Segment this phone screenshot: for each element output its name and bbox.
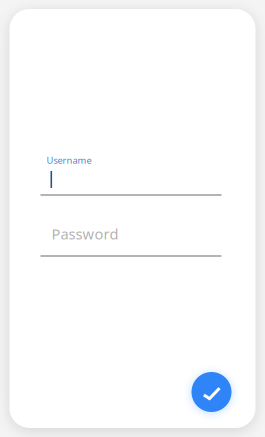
button[interactable]: Username xyxy=(40,154,221,202)
staticText: Username xyxy=(46,154,91,166)
button[interactable]: Submit xyxy=(191,372,231,412)
staticText: Password xyxy=(51,224,118,243)
button[interactable]: Password xyxy=(40,224,221,257)
